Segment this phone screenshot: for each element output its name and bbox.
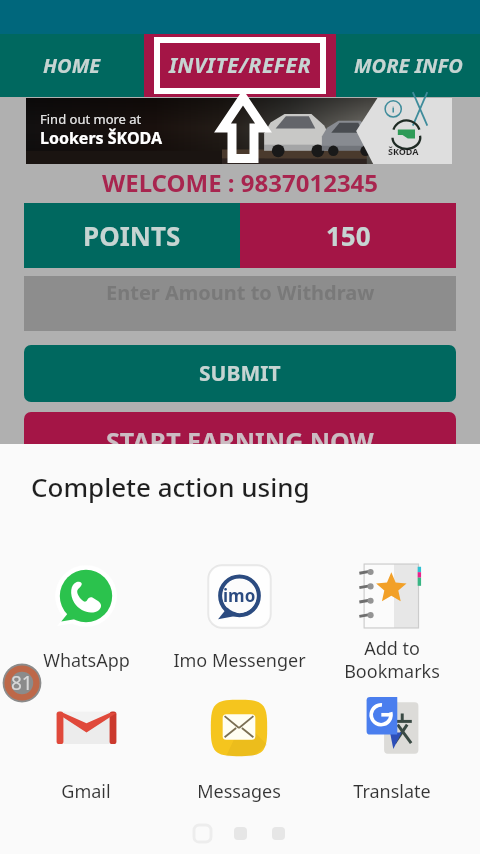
- button[interactable]: Recent apps: [259, 814, 297, 852]
- button[interactable]: imo: [172, 553, 306, 700]
- staticText: WELCOME : 9837012345: [102, 166, 379, 199]
- button[interactable]: Gmail: [19, 685, 153, 831]
- button[interactable]: Enter Amount to Withdraw: [24, 276, 456, 331]
- staticText: imo: [223, 584, 256, 607]
- staticText: Translate: [353, 779, 431, 804]
- staticText: MORE INFO: [354, 52, 463, 79]
- staticText: Imo Messenger: [173, 648, 306, 673]
- button[interactable]: Add to Bookmarks: [325, 553, 459, 688]
- button[interactable]: INVITE/REFER: [144, 34, 336, 97]
- button[interactable]: 150: [240, 203, 456, 268]
- staticText: Enter Amount to Withdraw: [106, 279, 375, 306]
- staticText: Lookers ŠKODA: [40, 127, 163, 149]
- button[interactable]: Home: [221, 814, 259, 852]
- button[interactable]: SUBMIT: [24, 345, 456, 402]
- staticText: Gmail: [61, 779, 111, 804]
- staticText: START EARNING NOW: [106, 424, 374, 458]
- button[interactable]: Advertisement: [26, 98, 452, 164]
- staticText: Messages: [197, 779, 281, 804]
- button[interactable]: WhatsApp: [19, 553, 153, 700]
- button[interactable]: Floating counter 81: [2, 663, 42, 703]
- staticText: WhatsApp: [43, 648, 130, 673]
- button[interactable]: Back: [183, 814, 221, 852]
- staticText: 150: [326, 218, 371, 253]
- button[interactable]: START EARNING NOW: [24, 412, 456, 469]
- staticText: Find out more at: [40, 110, 142, 128]
- button[interactable]: Translate: [325, 685, 459, 831]
- staticText: ŠKODA: [388, 145, 419, 157]
- staticText: SUBMIT: [199, 359, 281, 388]
- staticText: 81: [11, 670, 33, 696]
- staticText: Complete action using: [31, 469, 310, 504]
- staticText: HOME: [43, 52, 101, 79]
- button[interactable]: Messages: [172, 685, 306, 831]
- button[interactable]: POINTS: [24, 203, 240, 268]
- staticText: Add to Bookmarks: [344, 636, 440, 683]
- button[interactable]: MORE INFO: [336, 34, 480, 97]
- staticText: POINTS: [83, 218, 181, 253]
- staticText: INVITE/REFER: [169, 51, 311, 80]
- button[interactable]: HOME: [0, 34, 144, 97]
